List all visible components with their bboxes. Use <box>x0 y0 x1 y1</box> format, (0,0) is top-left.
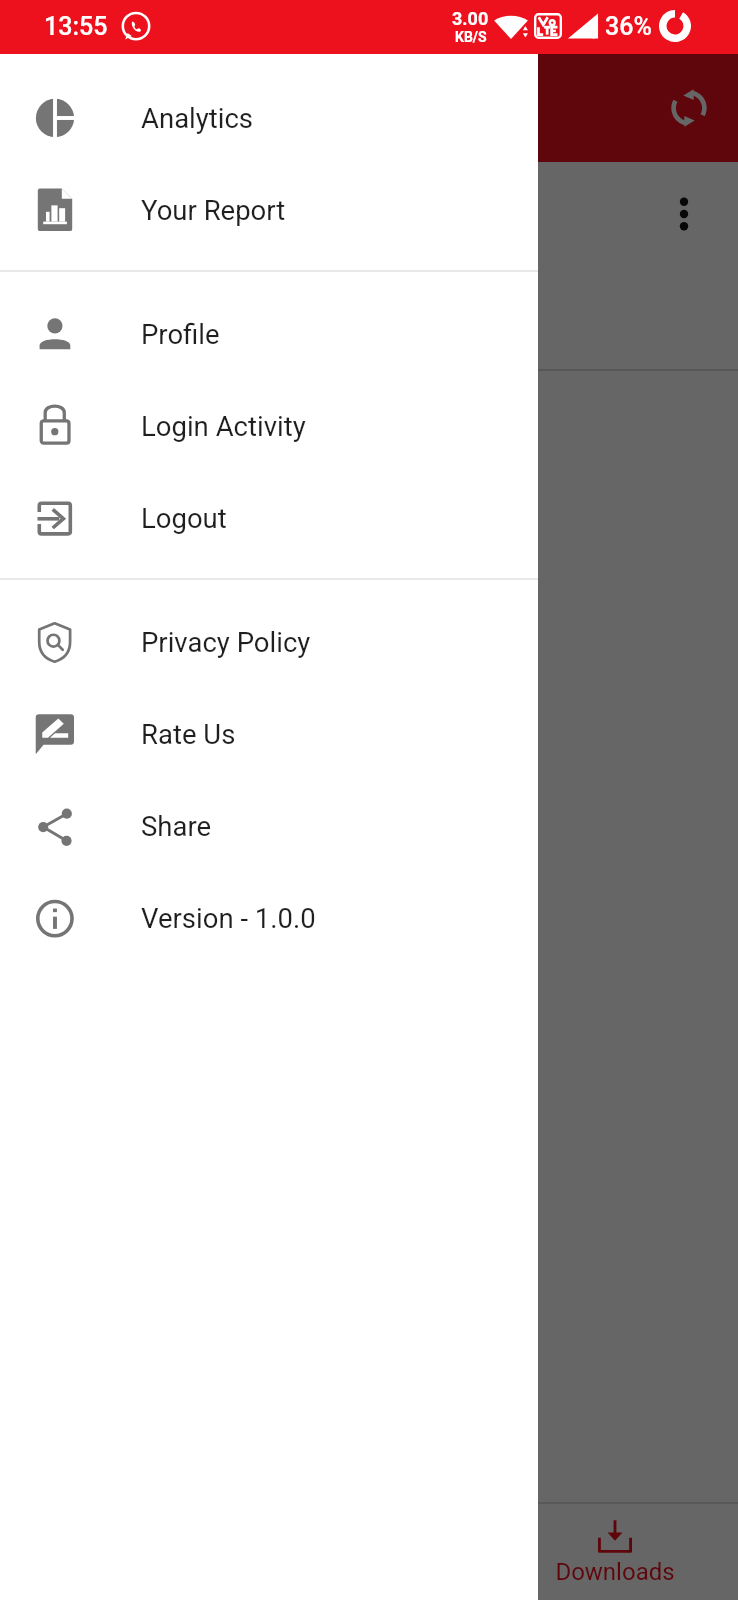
staticText: Your Report <box>141 194 286 226</box>
staticText: Reports <box>150 86 284 131</box>
button[interactable]: Downloads <box>492 1504 738 1600</box>
button[interactable]: Login Activity <box>0 378 538 470</box>
staticText: Logout <box>141 502 227 534</box>
staticText: Privacy Policy <box>141 626 311 658</box>
staticText: 13:55 <box>44 12 108 41</box>
staticText: 36% <box>605 12 652 41</box>
staticText: Rate Us <box>141 718 236 750</box>
staticText: Profile <box>141 318 220 350</box>
button[interactable]: Your Report <box>0 162 538 254</box>
staticText: Analytics <box>141 102 254 134</box>
button[interactable]: Profile <box>0 286 538 378</box>
button[interactable]: Rate Us <box>0 686 538 778</box>
button[interactable]: More options <box>654 184 714 244</box>
staticText: Share <box>141 810 212 842</box>
button[interactable]: Logout <box>0 470 538 562</box>
button[interactable]: Open navigation drawer <box>22 75 88 141</box>
button[interactable]: Privacy Policy <box>0 594 538 686</box>
button[interactable]: Share <box>0 778 538 870</box>
staticText: Login Activity <box>141 410 306 442</box>
button[interactable]: Version - 1.0.0 <box>0 870 538 962</box>
staticText: Downloads <box>555 1558 675 1586</box>
staticText: Version - 1.0.0 <box>141 902 316 934</box>
button[interactable]: Analytics <box>0 70 538 162</box>
button[interactable]: Refresh <box>656 75 722 141</box>
staticText: 3.00 <box>452 8 489 29</box>
staticText: KB/S <box>455 29 487 45</box>
